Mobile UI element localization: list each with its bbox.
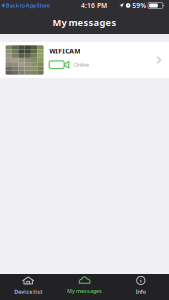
button[interactable]: Info [113, 274, 169, 300]
staticText: Device list [14, 288, 42, 295]
button[interactable]: WIFICAM [0, 42, 169, 78]
staticText: 4:16 PM [81, 1, 107, 10]
staticText: WIFICAM [49, 47, 80, 55]
staticText: 59% [132, 1, 146, 10]
staticText: Online [74, 61, 89, 68]
staticText: My messages [67, 287, 102, 294]
staticText: Back to App Store [6, 2, 50, 9]
staticText: Info [136, 288, 146, 295]
button[interactable]: My messages [56, 274, 113, 300]
button[interactable]: Device list [0, 274, 56, 300]
button[interactable]: Back to App Store [0, 0, 50, 11]
staticText: My messages [52, 16, 116, 29]
